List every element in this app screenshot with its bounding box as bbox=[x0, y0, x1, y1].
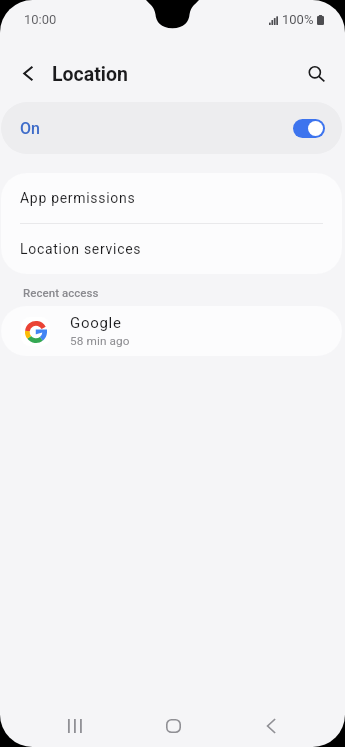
button[interactable]: Google bbox=[1, 306, 342, 356]
staticText: Google bbox=[70, 314, 122, 332]
button[interactable]: On bbox=[1, 102, 342, 154]
button[interactable]: Back bbox=[247, 705, 295, 747]
button[interactable]: Location services bbox=[1, 224, 342, 274]
staticText: Location services bbox=[20, 241, 142, 258]
staticText: 58 min ago bbox=[70, 334, 130, 348]
staticText: App permissions bbox=[20, 190, 136, 207]
staticText: Recent access bbox=[23, 286, 99, 300]
staticText: 100% bbox=[282, 12, 314, 27]
button[interactable]: Search bbox=[297, 56, 331, 90]
staticText: Location bbox=[52, 63, 128, 86]
staticText: 10:00 bbox=[24, 12, 57, 27]
staticText: On bbox=[20, 119, 40, 138]
button[interactable]: Navigate up bbox=[11, 56, 45, 90]
button[interactable]: Home bbox=[149, 705, 197, 747]
button[interactable]: Recent apps bbox=[50, 705, 98, 747]
button[interactable]: App permissions bbox=[1, 173, 342, 223]
